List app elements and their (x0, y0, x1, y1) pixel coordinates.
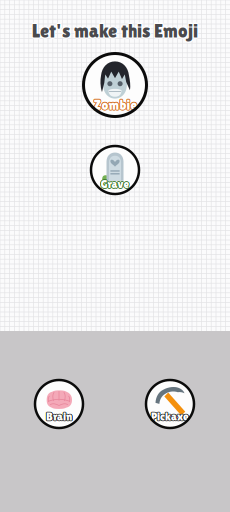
staticText: Zombie (94, 97, 137, 112)
staticText: Let's make this Emoji (33, 20, 199, 41)
button[interactable]: Pickaxe (146, 380, 194, 428)
staticText: Brain (46, 410, 72, 423)
staticText: Brain (46, 409, 72, 422)
staticText: Let's make this Emoji (32, 20, 198, 42)
button[interactable]: Brain (35, 380, 83, 428)
staticText: Pickaxe (150, 411, 188, 424)
staticText: Brain (47, 410, 73, 423)
staticText: Grave (100, 177, 129, 190)
staticText: Zombie (93, 98, 136, 113)
staticText: Let's make this Emoji (33, 21, 199, 42)
staticText: Pickaxe (151, 410, 189, 423)
staticText: Grave (100, 177, 129, 190)
staticText: Pickaxe (152, 409, 190, 422)
staticText: Pickaxe (150, 410, 188, 423)
button[interactable]: Grave (91, 146, 139, 194)
staticText: Grave (100, 178, 129, 191)
staticText: Let's make this Emoji (31, 21, 197, 42)
staticText: Brain (47, 409, 73, 422)
staticText: Grave (100, 177, 129, 190)
button[interactable]: Zombie (83, 53, 146, 116)
staticText: Grave (101, 177, 130, 190)
staticText: Brain (45, 410, 71, 423)
staticText: Zombie (93, 97, 136, 113)
staticText: Let's make this Emoji (32, 21, 198, 43)
staticText: Let's make this Emoji (31, 20, 197, 41)
staticText: Zombie (93, 97, 136, 113)
staticText: Zombie (94, 98, 137, 113)
staticText: Brain (47, 411, 73, 424)
staticText: Let's make this Emoji (31, 20, 197, 42)
staticText: Brain (45, 409, 71, 422)
staticText: Pickaxe (150, 409, 188, 422)
staticText: Pickaxe (151, 411, 189, 424)
staticText: Zombie (94, 97, 137, 113)
staticText: Brain (46, 411, 72, 424)
staticText: Let's make this Emoji (33, 20, 199, 42)
staticText: Brain (45, 411, 71, 424)
staticText: Grave (100, 177, 129, 190)
staticText: Zombie (93, 98, 136, 113)
staticText: Pickaxe (152, 411, 190, 424)
staticText: Grave (100, 178, 129, 191)
staticText: Grave (101, 177, 130, 190)
staticText: Let's make this Emoji (32, 19, 198, 40)
staticText: Pickaxe (152, 410, 190, 423)
staticText: Grave (101, 178, 130, 191)
staticText: Zombie (93, 97, 136, 112)
staticText: Zombie (93, 96, 136, 112)
staticText: Pickaxe (151, 409, 189, 422)
